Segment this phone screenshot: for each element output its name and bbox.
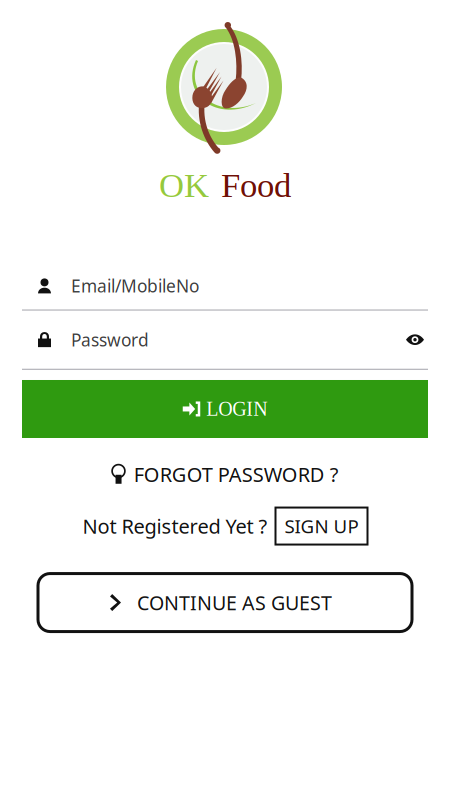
button[interactable]: CONTINUE AS GUEST: [38, 574, 412, 632]
button[interactable]: SIGN UP: [275, 508, 367, 545]
staticText: LOGIN: [206, 398, 267, 420]
button[interactable]: FORGOT PASSWORD ?: [111, 461, 339, 488]
staticText: Email/MobileNo: [71, 274, 199, 297]
staticText: Password: [71, 328, 149, 351]
staticText: Food: [221, 166, 291, 204]
staticText: FORGOT PASSWORD ?: [134, 461, 339, 488]
staticText: SIGN UP: [284, 514, 358, 538]
staticText: OK: [159, 166, 209, 204]
staticText: CONTINUE AS GUEST: [137, 589, 332, 616]
button[interactable]: LOGIN: [22, 380, 428, 438]
button[interactable]: Show password: [402, 334, 428, 345]
staticText: Not Registered Yet ?: [82, 513, 267, 539]
